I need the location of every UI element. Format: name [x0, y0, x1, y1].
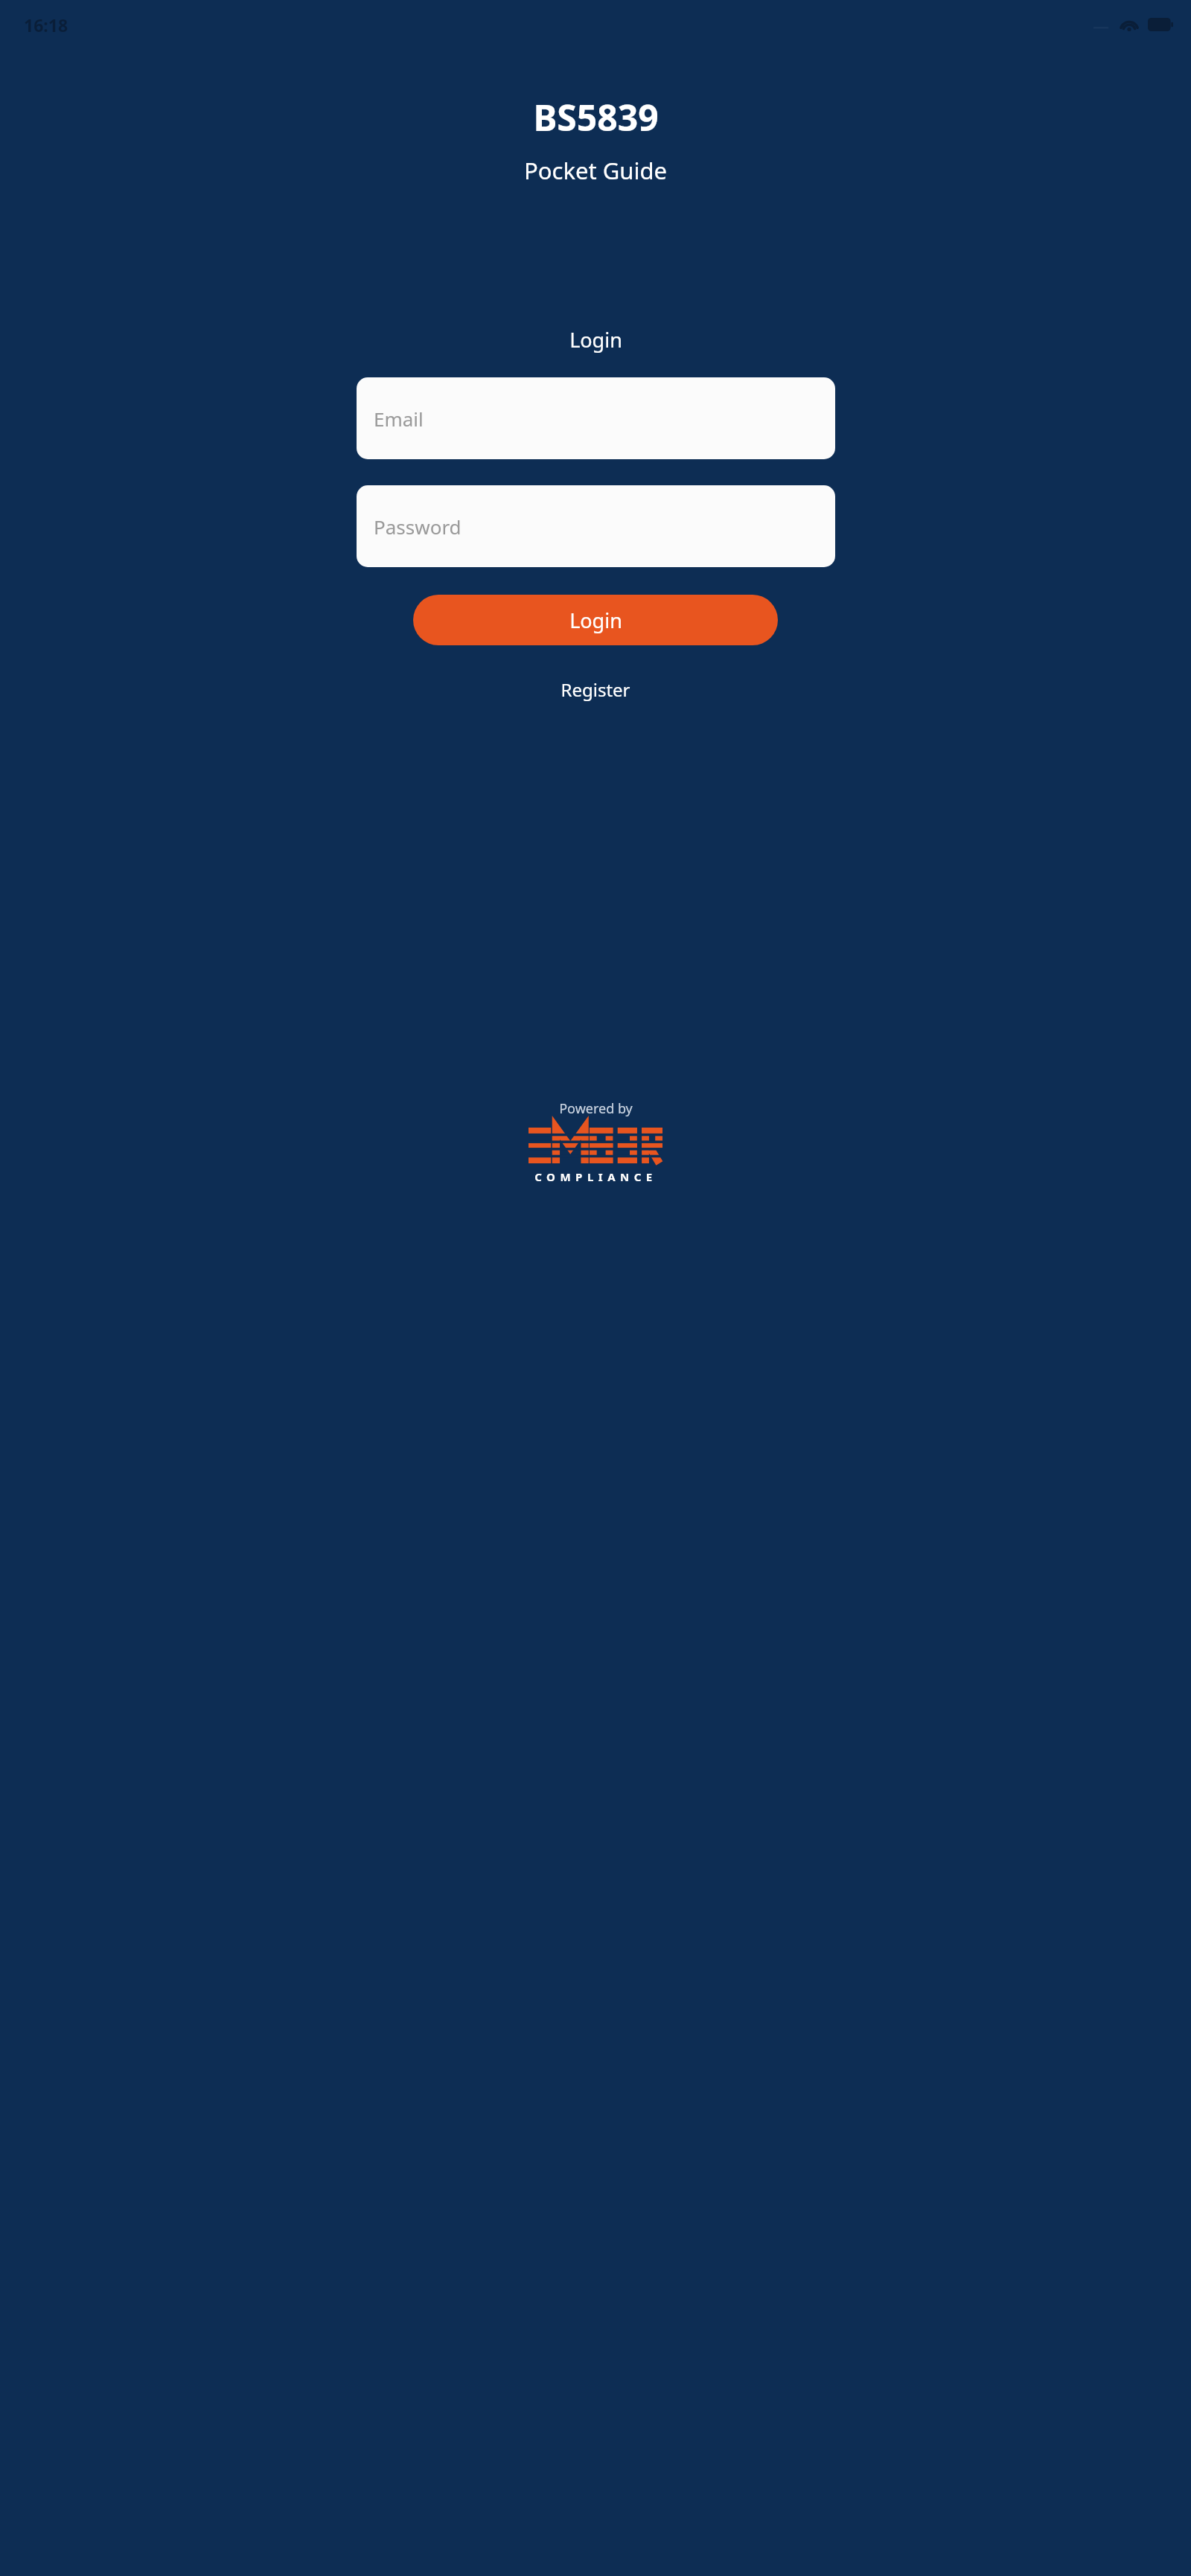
staticText: Powered by — [559, 1099, 633, 1118]
staticText: COMPLIANCE — [534, 1169, 657, 1184]
staticText: Pocket Guide — [524, 155, 667, 186]
staticText: Email — [374, 406, 424, 432]
staticText: Register — [561, 677, 630, 702]
staticText: 16:18 — [24, 13, 68, 36]
staticText: Login — [569, 326, 622, 354]
staticText: BS5839 — [533, 93, 659, 141]
button[interactable]: Password — [357, 485, 835, 567]
button[interactable]: Register — [547, 671, 644, 708]
button[interactable]: Email — [357, 377, 835, 459]
button[interactable]: Login — [413, 595, 778, 645]
staticText: Password — [374, 514, 462, 540]
staticText: Login — [569, 607, 622, 634]
